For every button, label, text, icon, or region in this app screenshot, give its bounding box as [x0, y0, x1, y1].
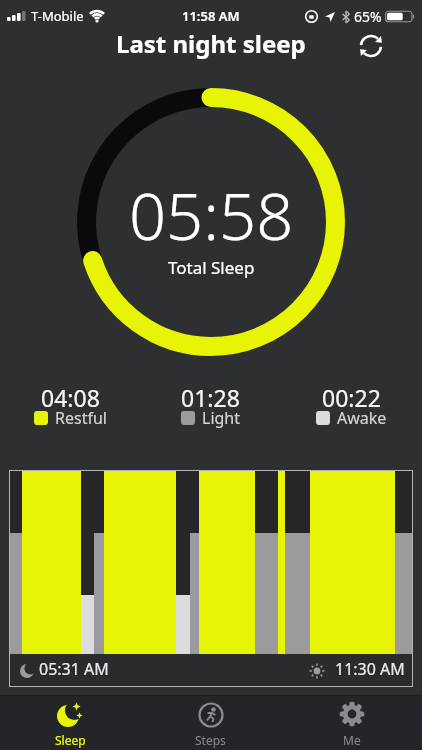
staticText: Sleep [55, 732, 86, 748]
staticText: 11:58 AM [182, 7, 240, 25]
staticText: 65% [354, 7, 382, 26]
staticText: 11:30 AM [335, 658, 405, 680]
button[interactable]: Me [281, 695, 422, 750]
button[interactable]: Sleep [0, 695, 140, 750]
button[interactable]: Steps [140, 695, 281, 750]
staticText: 01:28 [181, 382, 240, 413]
staticText: 05:58 [129, 171, 294, 260]
staticText: Steps [195, 732, 226, 748]
staticText: Last night sleep [116, 27, 306, 60]
staticText: Light [202, 407, 241, 429]
staticText: 05:31 AM [39, 658, 109, 680]
button[interactable] [349, 28, 393, 63]
staticText: 00:22 [322, 382, 381, 413]
staticText: T-Mobile [31, 7, 84, 25]
staticText: Restful [55, 407, 107, 429]
staticText: 04:08 [41, 382, 100, 413]
staticText: Awake [337, 407, 387, 429]
staticText: Me [343, 732, 361, 748]
staticText: Total Sleep [168, 256, 255, 279]
